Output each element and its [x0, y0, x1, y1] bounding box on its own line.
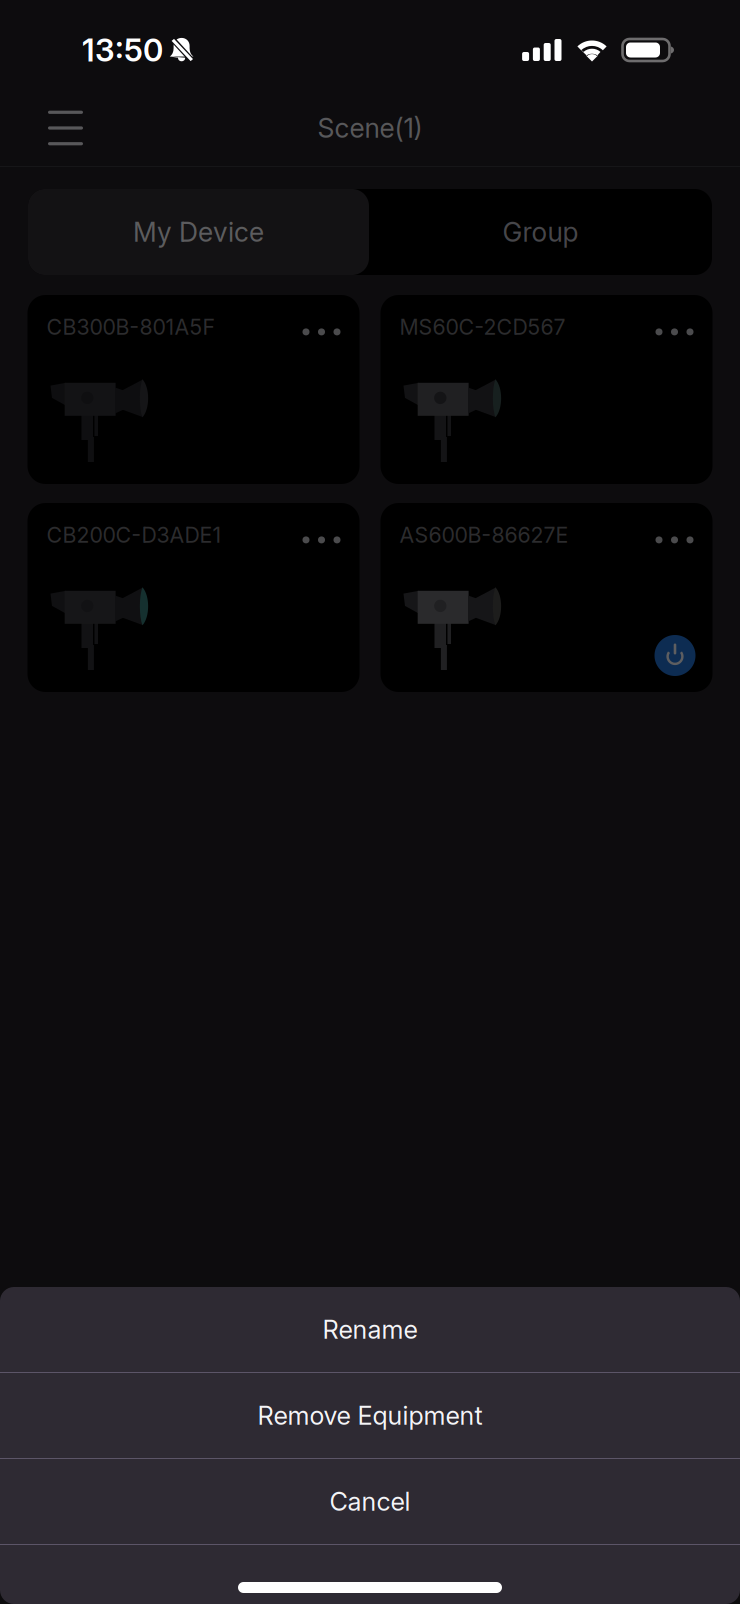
staticText: CB300B-801A5F: [46, 314, 215, 340]
staticText: 13:50: [82, 31, 163, 69]
staticText: MS60C-2CD567: [399, 314, 565, 340]
staticText: My Device: [133, 216, 264, 248]
button[interactable]: CB300B-801A5F: [27, 295, 359, 484]
staticText: Cancel: [329, 1486, 410, 1517]
staticText: Remove Equipment: [257, 1400, 482, 1431]
button[interactable]: MS60C-2CD567: [380, 295, 712, 484]
button[interactable]: My Device: [28, 189, 369, 275]
button[interactable]: Cancel: [0, 1459, 740, 1544]
staticText: AS600B-86627E: [399, 522, 568, 548]
button[interactable]: AS600B-86627E: [380, 503, 712, 692]
staticText: Group: [502, 216, 578, 248]
button[interactable]: Rename: [0, 1287, 740, 1372]
button[interactable]: CB200C-D3ADE1: [27, 503, 359, 692]
button[interactable]: Remove Equipment: [0, 1373, 740, 1458]
button[interactable]: Group: [369, 189, 712, 275]
staticText: CB200C-D3ADE1: [46, 522, 221, 548]
staticText: Rename: [322, 1314, 417, 1345]
staticText: Scene(1): [317, 112, 422, 144]
button[interactable]: Menu: [31, 97, 100, 159]
